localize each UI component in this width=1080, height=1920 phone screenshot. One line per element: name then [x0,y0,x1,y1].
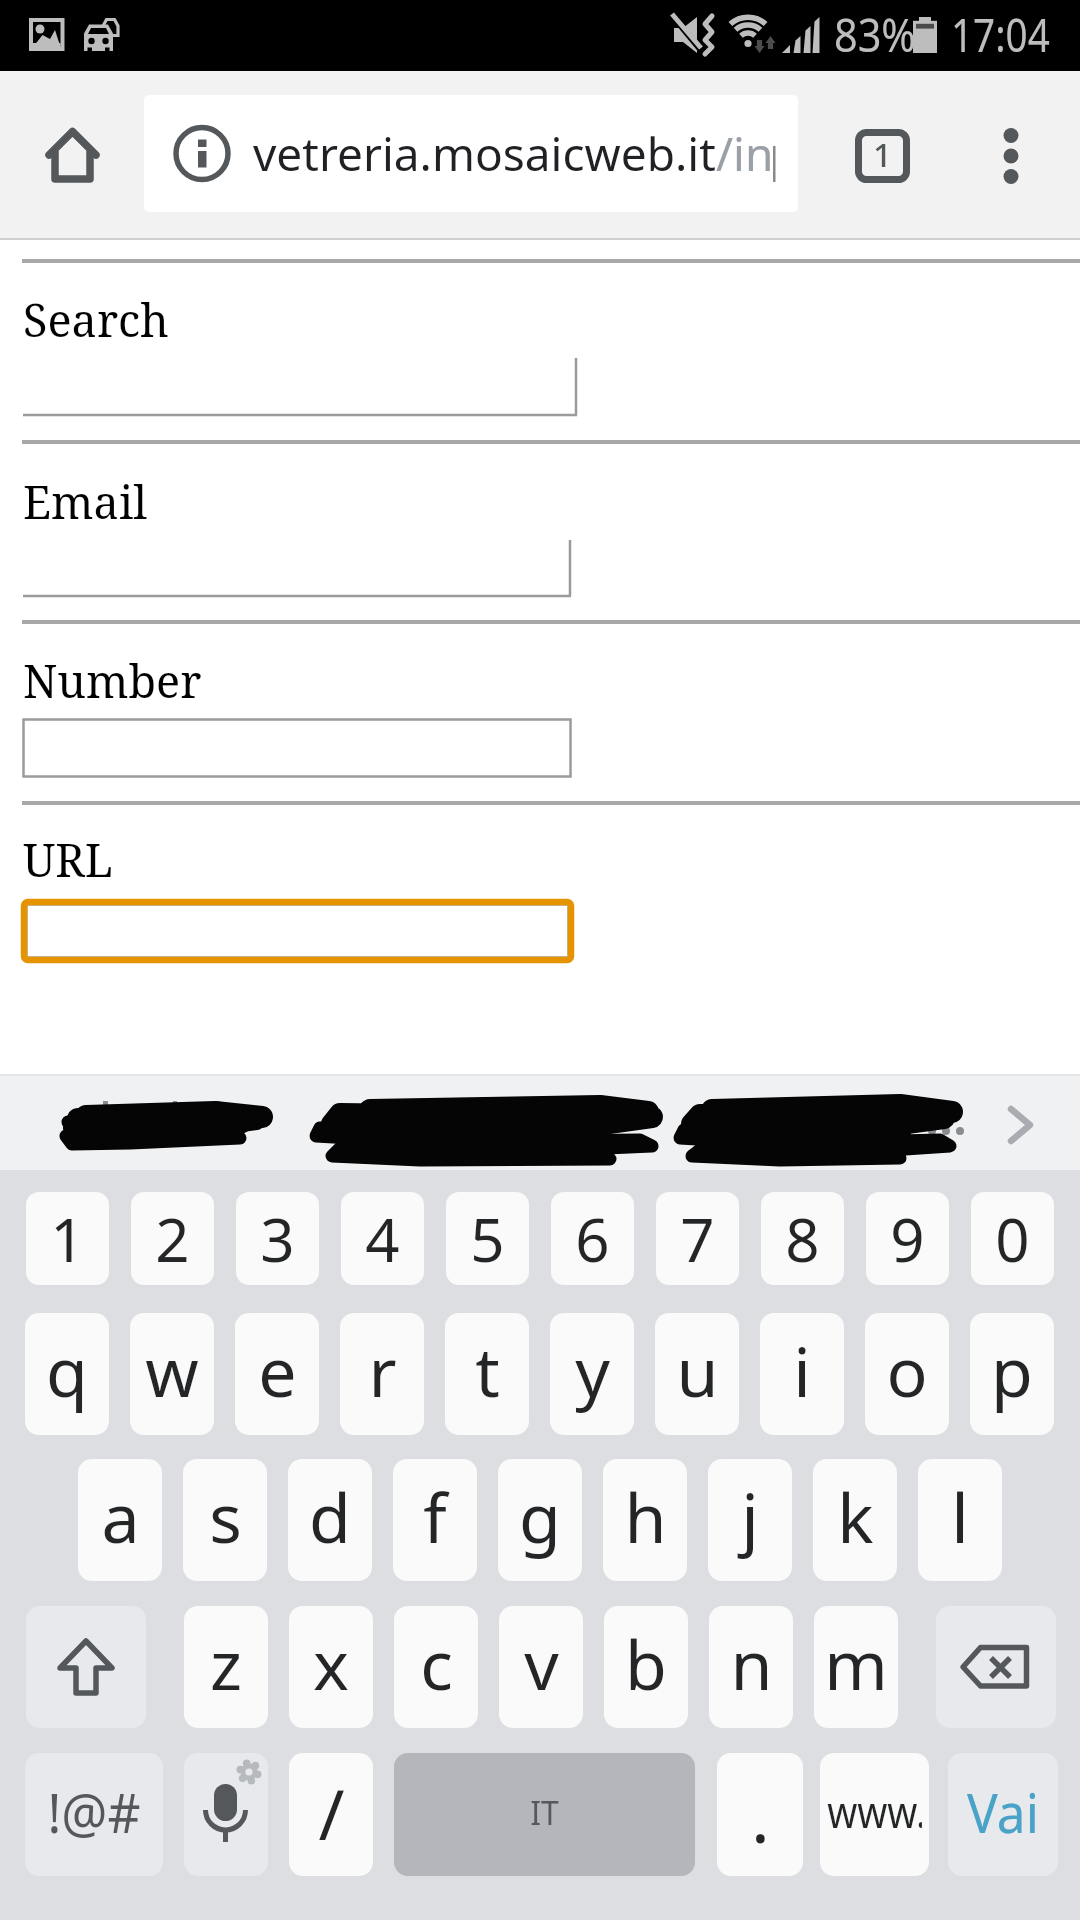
button[interactable]: q [25,1313,109,1435]
button[interactable]: k [813,1459,897,1581]
staticText: j [741,1470,759,1563]
staticText: 5 [470,1198,505,1280]
staticText: / [318,1765,345,1860]
button[interactable]: Home [16,85,129,226]
staticText: e [258,1324,297,1417]
staticText: www. [827,1781,922,1841]
button[interactable]: c [394,1606,478,1728]
button[interactable]: j [708,1459,792,1581]
button[interactable]: w [130,1313,214,1435]
staticText: vetreria.mosaicweb.it [253,122,716,185]
staticText: i [793,1324,811,1417]
button[interactable]: / [289,1753,373,1876]
staticText: x [313,1617,349,1710]
button[interactable]: u [655,1313,739,1435]
staticText: y [575,1324,610,1417]
staticText: Number [23,650,202,711]
staticText: a [101,1470,140,1563]
staticText: . [751,1768,770,1863]
staticText: 6 [575,1198,610,1280]
staticText: 0 [995,1198,1030,1280]
button[interactable]: n [709,1606,793,1728]
staticText: 17:04 [951,3,1050,66]
button[interactable]: IT [394,1753,695,1876]
button[interactable]: Backspace [936,1606,1056,1728]
button[interactable]: a [78,1459,162,1581]
button[interactable]: v [499,1606,583,1728]
button[interactable]: 5 [446,1192,529,1285]
staticText: f [423,1470,447,1563]
staticText: s [209,1470,242,1563]
staticText: 7 [680,1198,715,1280]
staticText: IT [530,1791,559,1835]
button[interactable]: Voice input [184,1753,268,1876]
staticText: 4 [365,1198,400,1280]
staticText: 9 [890,1198,925,1280]
button[interactable]: x [289,1606,373,1728]
button[interactable]: 3 [236,1192,319,1285]
button[interactable]: r [340,1313,424,1435]
staticText: c [420,1617,453,1710]
button[interactable]: 9 [866,1192,949,1285]
button[interactable]: vetreria.mosaicweb.it [144,95,798,212]
button[interactable]: 8 [761,1192,844,1285]
staticText: t [475,1324,500,1417]
button[interactable]: e [235,1313,319,1435]
button[interactable]: b [604,1606,688,1728]
button[interactable]: 1 [26,1192,109,1285]
staticText: Search [23,289,169,350]
staticText: 1 [873,132,892,177]
button[interactable]: t [445,1313,529,1435]
staticText: o [886,1324,928,1417]
staticText: k [837,1470,874,1563]
staticText: q [46,1324,88,1417]
staticText: 1 [50,1198,85,1280]
staticText: g [519,1470,561,1563]
staticText: l [951,1470,969,1563]
staticText: h [624,1470,667,1563]
button[interactable]: o [865,1313,949,1435]
button[interactable]: s [183,1459,267,1581]
button[interactable]: !@# [25,1753,163,1876]
button[interactable]: z [184,1606,268,1728]
button[interactable]: 2 [131,1192,214,1285]
button[interactable]: 7 [656,1192,739,1285]
staticText: n [730,1617,773,1710]
button[interactable]: g [498,1459,582,1581]
button[interactable]: Vai [948,1753,1058,1876]
staticText: w [145,1324,199,1417]
button[interactable]: m [814,1606,898,1728]
staticText: z [210,1617,242,1710]
button[interactable]: l [918,1459,1002,1581]
button[interactable]: Shift [26,1606,146,1728]
staticText: Email [23,471,148,532]
staticText: URL [23,829,113,890]
staticText: 3 [260,1198,295,1280]
button[interactable]: h [603,1459,687,1581]
button[interactable]: 6 [551,1192,634,1285]
staticText: v [524,1617,559,1710]
button[interactable]: Tabs [831,100,933,211]
staticText: 8 [785,1198,820,1280]
staticText: p [991,1324,1033,1417]
button[interactable]: d [288,1459,372,1581]
button[interactable]: 4 [341,1192,424,1285]
button[interactable]: y [550,1313,634,1435]
staticText: Vai [967,1775,1039,1849]
staticText: !@# [47,1775,141,1849]
staticText: 2 [155,1198,190,1280]
staticText: 83% [834,3,916,66]
staticText: u [676,1324,719,1417]
button[interactable]: 0 [971,1192,1054,1285]
button[interactable]: p [970,1313,1054,1435]
button[interactable]: . [717,1753,803,1876]
button[interactable]: i [760,1313,844,1435]
button[interactable]: More options [966,100,1056,211]
button[interactable]: www. [820,1753,929,1876]
staticText: b [625,1617,667,1710]
button[interactable]: f [393,1459,477,1581]
staticText: /in [716,122,774,185]
staticText: r [368,1324,397,1417]
staticText: d [309,1470,351,1563]
staticText: m [824,1617,888,1710]
